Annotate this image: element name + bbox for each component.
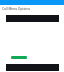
staticText: Call Menu Options [2, 7, 31, 11]
button[interactable] [11, 56, 27, 59]
